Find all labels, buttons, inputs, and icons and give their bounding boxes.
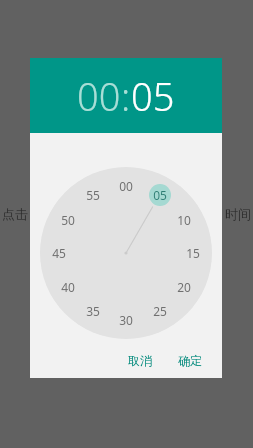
button[interactable]: 40 <box>57 276 79 298</box>
button[interactable]: 35 <box>82 300 104 322</box>
button[interactable]: 55 <box>82 184 104 206</box>
staticText: 50 <box>61 212 75 228</box>
staticText: 00 <box>119 178 133 194</box>
staticText: 点击 <box>2 206 28 222</box>
button[interactable]: 15 <box>182 242 204 264</box>
staticText: 时间 <box>225 206 251 222</box>
button[interactable]: 45 <box>48 242 70 264</box>
staticText: 45 <box>52 245 66 261</box>
button[interactable]: 30 <box>115 309 137 331</box>
button[interactable]: 20 <box>173 276 195 298</box>
staticText: : <box>121 70 131 122</box>
staticText: 55 <box>86 187 100 203</box>
button[interactable]: 00 <box>77 70 121 122</box>
staticText: 05 <box>153 187 167 203</box>
staticText: 40 <box>61 279 75 295</box>
staticText: 35 <box>86 303 100 319</box>
button[interactable]: 10 <box>173 209 195 231</box>
button[interactable]: 05 <box>131 70 175 122</box>
button[interactable]: 50 <box>57 209 79 231</box>
staticText: 25 <box>153 303 167 319</box>
staticText: 15 <box>186 245 200 261</box>
button[interactable]: Minute dial, 05 selected <box>40 167 212 339</box>
button[interactable]: 取消 <box>118 347 162 374</box>
staticText: 30 <box>119 312 133 328</box>
button[interactable]: 05 <box>149 184 171 206</box>
button[interactable]: 确定 <box>168 347 212 374</box>
button[interactable]: 25 <box>149 300 171 322</box>
staticText: 20 <box>177 279 191 295</box>
staticText: 10 <box>177 212 191 228</box>
button[interactable]: 00 <box>115 175 137 197</box>
